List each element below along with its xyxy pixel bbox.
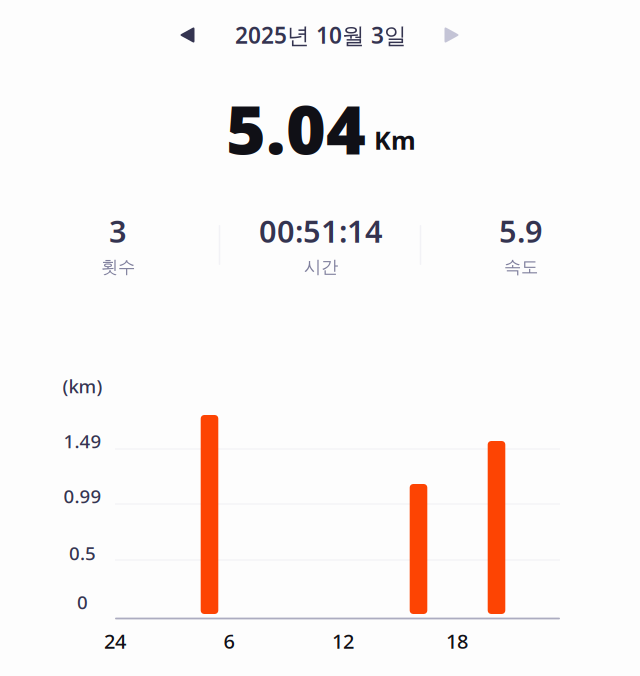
staticText: 00:51:14 — [259, 210, 383, 251]
button[interactable]: Previous day — [164, 12, 210, 58]
staticText: 2025년 10월 3일 — [235, 20, 407, 50]
button[interactable]: Next day — [429, 12, 475, 58]
staticText: 시간 — [304, 256, 338, 277]
staticText: 횟수 — [101, 256, 135, 277]
staticText: 0.99 — [63, 484, 101, 508]
staticText: 속도 — [504, 256, 538, 277]
staticText: 0 — [77, 590, 88, 614]
staticText: 12 — [332, 628, 354, 654]
staticText: (km) — [62, 374, 102, 398]
staticText: 18 — [446, 628, 468, 654]
staticText: Km — [374, 123, 416, 157]
staticText: 3 — [109, 210, 127, 251]
staticText: 24 — [104, 628, 126, 654]
staticText: 0.5 — [69, 541, 96, 565]
staticText: 6 — [223, 628, 234, 654]
staticText: 5.04 — [226, 83, 366, 173]
staticText: 5.9 — [499, 210, 543, 251]
staticText: 1.49 — [63, 429, 101, 453]
